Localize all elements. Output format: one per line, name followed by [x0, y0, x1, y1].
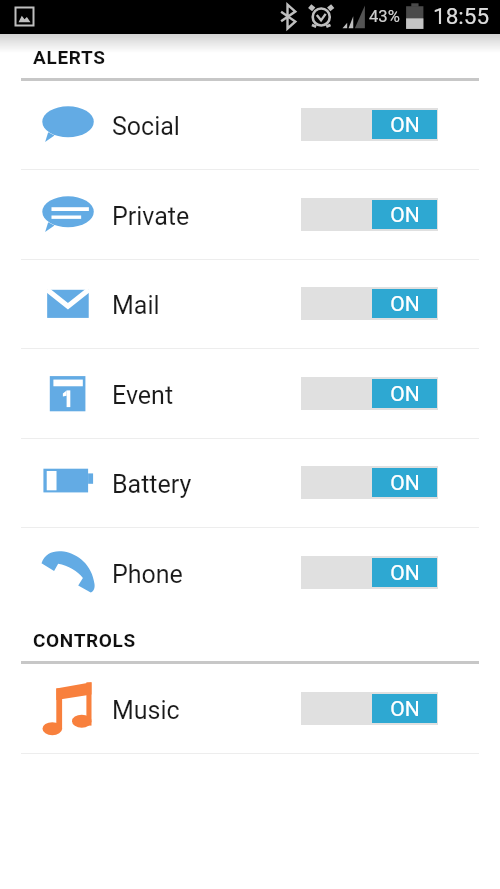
- staticText: ON: [390, 292, 420, 317]
- staticText: Music: [112, 696, 180, 725]
- button[interactable]: Music: [0, 664, 500, 754]
- staticText: Private: [112, 202, 190, 231]
- button[interactable]: Toggle: [301, 108, 438, 141]
- button[interactable]: Event: [0, 349, 500, 439]
- staticText: ON: [390, 471, 420, 496]
- button[interactable]: Toggle: [301, 377, 438, 410]
- staticText: Event: [112, 381, 174, 410]
- button[interactable]: Battery: [0, 438, 500, 528]
- staticText: 43%: [369, 7, 400, 26]
- button[interactable]: Toggle: [301, 692, 438, 725]
- button[interactable]: Phone: [0, 528, 500, 618]
- staticText: CONTROLS: [33, 629, 136, 651]
- button[interactable]: Toggle: [301, 556, 438, 589]
- button[interactable]: Social: [0, 80, 500, 170]
- button[interactable]: Private: [0, 170, 500, 260]
- staticText: Social: [112, 112, 180, 141]
- staticText: ON: [390, 113, 420, 138]
- staticText: Mail: [112, 291, 160, 320]
- button[interactable]: Toggle: [301, 466, 438, 499]
- staticText: Phone: [112, 560, 183, 589]
- staticText: ON: [390, 382, 420, 407]
- staticText: Battery: [112, 470, 192, 499]
- staticText: 18:55: [433, 3, 490, 29]
- button[interactable]: Toggle: [301, 198, 438, 231]
- staticText: ON: [390, 697, 420, 722]
- staticText: ON: [390, 203, 420, 228]
- button[interactable]: Mail: [0, 259, 500, 349]
- button[interactable]: Toggle: [301, 287, 438, 320]
- staticText: ON: [390, 561, 420, 586]
- staticText: ALERTS: [33, 46, 106, 68]
